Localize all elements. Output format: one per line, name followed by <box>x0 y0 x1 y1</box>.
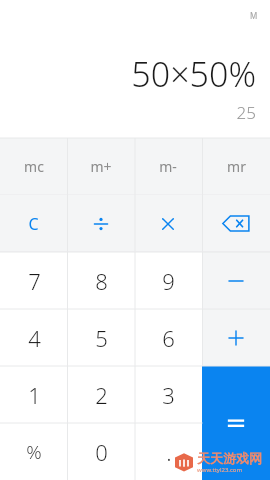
staticText: 7 <box>28 266 41 296</box>
staticText: m- <box>159 157 177 176</box>
button[interactable]: mc <box>0 138 67 195</box>
button[interactable]: Multiply <box>134 195 202 252</box>
button[interactable]: 7 <box>0 252 68 309</box>
staticText: 天天游戏网 <box>197 450 262 466</box>
staticText: 6 <box>162 323 175 353</box>
staticText: 1 <box>28 380 41 410</box>
button[interactable]: 5 <box>68 309 135 366</box>
staticText: 3 <box>162 380 175 410</box>
staticText: 9 <box>162 266 175 296</box>
button[interactable]: 3 <box>135 366 202 423</box>
staticText: 4 <box>28 323 41 353</box>
staticText: mr <box>227 157 246 176</box>
staticText: 50×50% <box>131 51 256 97</box>
button[interactable]: 2 <box>68 366 135 423</box>
button[interactable]: m+ <box>67 138 134 195</box>
button[interactable]: C <box>0 195 67 252</box>
button[interactable]: 6 <box>135 309 202 366</box>
staticText: 8 <box>95 266 108 296</box>
staticText: 2 <box>95 380 108 410</box>
button[interactable]: Subtract <box>202 252 270 309</box>
button[interactable]: 8 <box>68 252 135 309</box>
staticText: 25 <box>236 101 256 124</box>
staticText: C <box>28 213 39 235</box>
button[interactable]: Divide <box>67 195 134 252</box>
staticText: . <box>166 437 172 467</box>
button[interactable]: 0 <box>68 423 135 480</box>
staticText: M <box>250 10 258 21</box>
staticText: % <box>26 439 42 465</box>
button[interactable]: . <box>135 423 202 480</box>
button[interactable]: Backspace <box>202 195 270 252</box>
button[interactable]: 4 <box>0 309 68 366</box>
button[interactable]: % <box>0 423 68 480</box>
staticText: mc <box>24 157 44 176</box>
button[interactable]: 1 <box>0 366 68 423</box>
button[interactable]: m- <box>134 138 202 195</box>
staticText: www.ttyl23.com <box>197 466 243 474</box>
button[interactable]: Equals <box>202 366 270 480</box>
staticText: m+ <box>90 157 112 176</box>
staticText: 5 <box>95 323 108 353</box>
staticText: 0 <box>95 437 108 467</box>
button[interactable]: Add <box>202 309 270 366</box>
button[interactable]: mr <box>202 138 270 195</box>
button[interactable]: 9 <box>135 252 202 309</box>
